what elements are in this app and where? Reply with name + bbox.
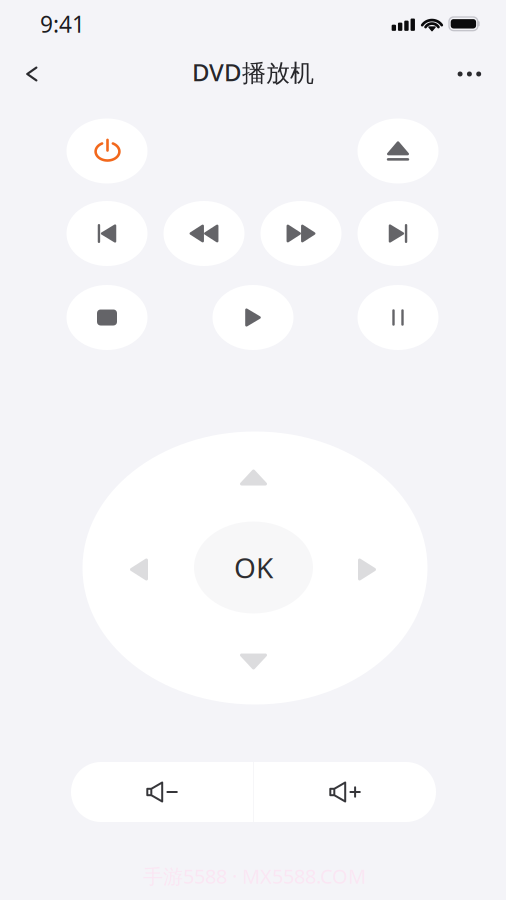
button[interactable]: Previous track <box>66 201 147 266</box>
button[interactable]: Volume up <box>254 762 436 822</box>
staticText: 9:41 <box>40 9 85 39</box>
staticText: OK <box>234 549 273 586</box>
button[interactable]: Volume down <box>71 762 253 822</box>
staticText: 手游5588 · MX5588.COM <box>143 863 366 889</box>
button[interactable]: Rewind <box>163 201 244 266</box>
staticText: DVD播放机 <box>192 56 314 88</box>
button[interactable]: Pause <box>357 285 438 350</box>
button[interactable]: More options <box>442 50 497 98</box>
button[interactable]: OK <box>194 521 313 613</box>
button[interactable]: Eject <box>357 118 438 183</box>
button[interactable]: Left <box>112 540 166 598</box>
button[interactable]: Fast forward <box>260 201 341 266</box>
button[interactable]: Up <box>222 451 285 503</box>
button[interactable]: Stop <box>66 285 147 350</box>
button[interactable]: Play <box>212 285 293 350</box>
button[interactable]: Back <box>8 51 55 96</box>
button[interactable]: Next track <box>357 201 438 266</box>
button[interactable]: Right <box>340 540 394 598</box>
button[interactable]: Down <box>222 635 285 687</box>
button[interactable]: Power <box>66 118 147 183</box>
